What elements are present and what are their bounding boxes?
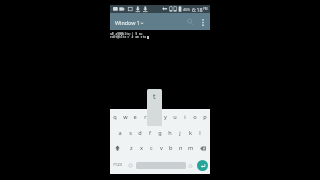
button[interactable]: d — [135, 125, 145, 140]
button[interactable]: n — [176, 140, 186, 156]
staticText: b — [169, 144, 173, 152]
staticText: g — [158, 129, 162, 137]
button[interactable]: s — [125, 125, 135, 140]
staticText: a — [118, 129, 122, 137]
button[interactable]: j — [175, 125, 185, 140]
button[interactable]: p — [200, 109, 210, 125]
staticText: h — [168, 129, 172, 137]
staticText: PM — [203, 7, 208, 11]
staticText: t — [153, 92, 156, 102]
button[interactable]: Backspace — [196, 140, 210, 156]
button[interactable]: c — [146, 140, 156, 156]
staticText: q — [113, 113, 117, 121]
button[interactable]: y — [160, 109, 170, 125]
staticText: p — [203, 113, 207, 121]
button[interactable]: e — [130, 109, 140, 125]
button[interactable]: f — [145, 125, 155, 140]
button[interactable]: r — [140, 109, 150, 125]
staticText: root@klte:/ # am sta — [110, 35, 147, 39]
staticText: ?123 — [113, 162, 123, 168]
staticText: z — [130, 144, 133, 152]
button[interactable]: Enter — [197, 160, 208, 171]
staticText: s — [129, 129, 132, 137]
button[interactable]: g — [155, 125, 165, 140]
staticText: f — [149, 129, 151, 137]
button[interactable]: a — [115, 125, 125, 140]
button[interactable]: w — [120, 109, 130, 125]
staticText: i — [184, 113, 186, 121]
staticText: k — [189, 129, 192, 137]
staticText: 6:18 — [192, 6, 203, 13]
staticText: m — [188, 144, 194, 152]
staticText: u — [173, 113, 177, 121]
staticText: e — [133, 113, 137, 121]
button[interactable]: q — [110, 109, 120, 125]
button[interactable]: u — [170, 109, 180, 125]
button[interactable]: l — [195, 125, 205, 140]
button[interactable]: o — [190, 109, 200, 125]
staticText: n — [179, 144, 183, 152]
staticText: w — [123, 113, 128, 121]
staticText: o — [193, 113, 197, 121]
button[interactable]: v — [156, 140, 166, 156]
button[interactable]: Period — [186, 156, 195, 174]
staticText: x — [140, 144, 143, 152]
staticText: v — [160, 144, 163, 152]
staticText: d — [138, 129, 142, 137]
button[interactable]: More options — [197, 16, 209, 28]
button[interactable]: i — [180, 109, 190, 125]
button[interactable]: h — [165, 125, 175, 140]
staticText: Window 1 — [115, 19, 140, 26]
button[interactable]: z — [126, 140, 136, 156]
staticText: y — [164, 113, 167, 121]
button[interactable]: Emoji — [125, 156, 136, 174]
staticText: u0_a98@klte:/ $ su — [110, 32, 143, 36]
staticText: c — [150, 144, 153, 152]
staticText: l — [199, 129, 201, 137]
button[interactable]: k — [185, 125, 195, 140]
button[interactable]: b — [166, 140, 176, 156]
staticText: 46% — [183, 7, 191, 12]
staticText: r — [144, 113, 147, 121]
button[interactable]: x — [136, 140, 146, 156]
button[interactable]: m — [186, 140, 196, 156]
button[interactable]: ?123 — [110, 156, 125, 174]
button[interactable]: Window 1 — [115, 19, 144, 26]
button[interactable]: Search — [183, 15, 197, 29]
staticText: j — [179, 129, 181, 137]
button[interactable]: Shift — [109, 140, 125, 156]
